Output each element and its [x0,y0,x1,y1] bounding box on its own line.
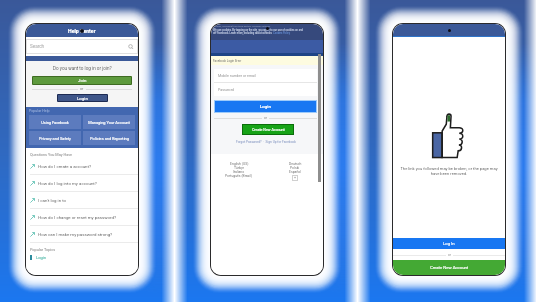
staticText: Help Center [68,28,96,34]
staticText: or [448,253,451,257]
staticText: Italiano [233,170,245,174]
staticText: Mobile number or email [218,74,256,78]
staticText: Cookies Policy [273,32,290,35]
staticText: Policies and Reporting [90,136,129,141]
staticText: Login [36,255,46,260]
staticText: Español [289,170,302,174]
staticText: Forgot Password? · Sign Up for Facebook [236,140,296,144]
staticText: + [294,176,297,180]
staticText: off Facebook. Learn more, including abou… [213,32,273,35]
staticText: How do I change or reset my password? [38,215,116,220]
button[interactable]: English (US) [230,162,249,166]
button[interactable]: Policies and Reporting [83,131,135,145]
staticText: How do I create a account? [38,164,92,169]
staticText: Login [77,96,88,101]
button[interactable]: How do I log into my account? [26,175,138,191]
button[interactable]: More languages [292,175,298,181]
button[interactable]: How can I make my password strong? [26,226,138,242]
staticText: Popular Help [29,109,50,113]
button[interactable]: Login [57,94,108,102]
staticText: Search [30,44,45,49]
button[interactable]: I can't log in to [26,192,138,208]
staticText: Managing Your Account [88,120,130,125]
staticText: or [80,87,84,91]
staticText: Log In [443,241,455,246]
button[interactable]: Português (Brasil) [225,174,253,178]
staticText: How do I log into my account? [38,181,97,186]
staticText: Questions You May Have [30,152,73,156]
button[interactable]: Deutsch [289,162,302,166]
button[interactable]: Türkçe [234,166,245,170]
staticText: Password [218,88,234,92]
staticText: English (US) [230,162,249,166]
staticText: Create New Account [252,128,285,132]
staticText: Using Facebook [41,120,69,125]
staticText: Português (Brasil) [225,174,253,178]
button[interactable]: Managing Your Account [83,115,135,129]
staticText: Polski [290,166,300,170]
staticText: Deutsch [289,162,302,166]
staticText: Türkçe [234,166,245,170]
staticText: Privacy and Safety [39,136,71,141]
button[interactable]: Create New Account [393,260,505,275]
button[interactable]: How do I change or reset my password? [26,209,138,225]
staticText: Facebook Login Error [213,59,242,63]
button[interactable]: Privacy and Safety [29,131,81,145]
staticText: Popular Topics [30,247,56,251]
button[interactable]: Español [289,170,302,174]
button[interactable]: How do I create a account? [26,158,138,174]
staticText: I can't log in to [38,198,67,203]
button[interactable]: Mobile number or email [214,69,317,82]
staticText: How can I make my password strong? [38,232,113,237]
button[interactable]: Join [32,76,132,85]
button[interactable]: Create New Account [242,124,294,135]
button[interactable]: Polski [290,166,300,170]
staticText: Create New Account [430,265,469,270]
staticText: or [264,116,267,120]
button[interactable]: Search [26,39,138,54]
button[interactable]: Login [214,100,317,113]
button[interactable]: Log In [393,238,505,249]
staticText: Login [260,104,271,109]
staticText: Join [78,78,87,83]
staticText: We use cookies. By tapping on the site, … [213,29,303,32]
staticText: The link you followed may be broken, or … [394,166,504,176]
button[interactable]: Login [26,255,138,260]
staticText: cookies, including from third parties. M… [213,25,271,28]
staticText: Do you want to log in or join? [53,66,112,71]
button[interactable]: Using Facebook [29,115,81,129]
button[interactable]: Password [214,83,317,96]
button[interactable]: Italiano [233,170,245,174]
